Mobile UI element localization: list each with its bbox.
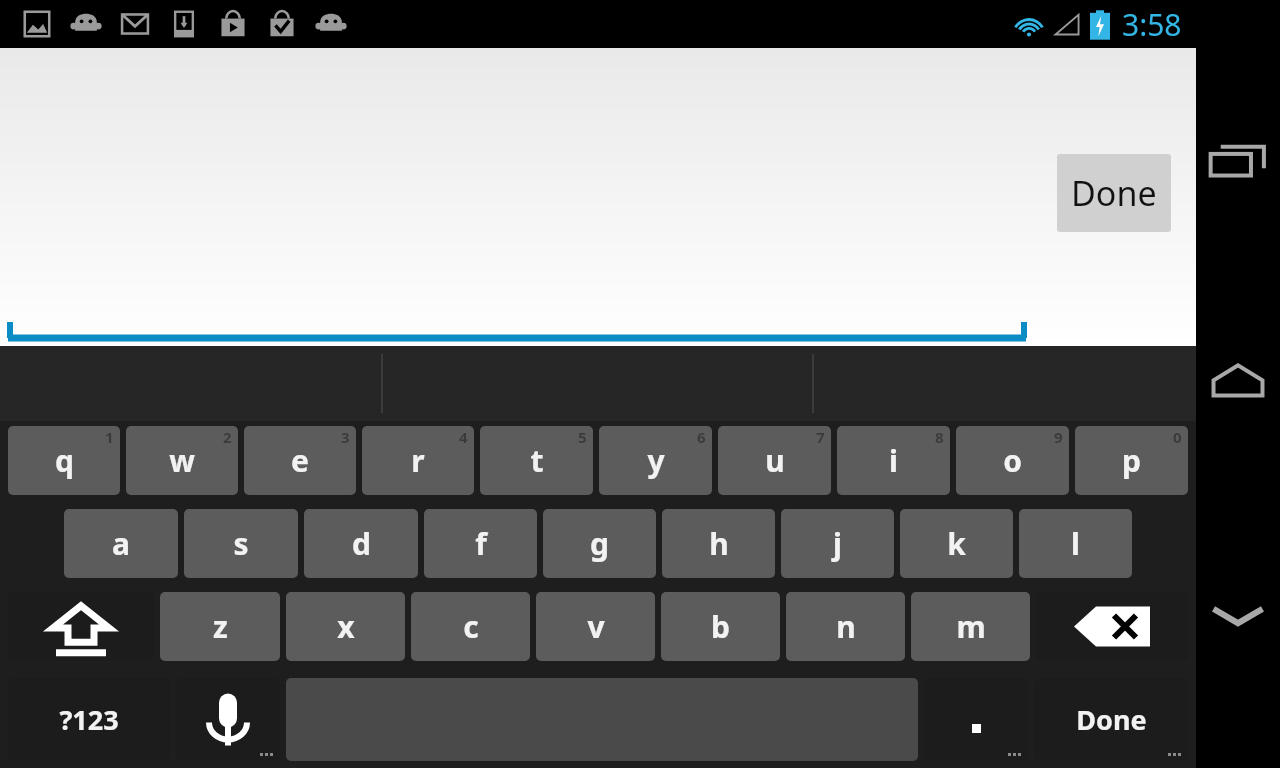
- staticText: y: [647, 440, 665, 481]
- staticText: z: [213, 606, 228, 647]
- staticText: a: [112, 523, 130, 564]
- button[interactable]: u: [718, 426, 831, 495]
- button[interactable]: x: [286, 592, 405, 661]
- staticText: h: [709, 523, 729, 564]
- staticText: w: [169, 440, 195, 481]
- button[interactable]: ?123: [8, 678, 170, 761]
- staticText: d: [352, 523, 371, 564]
- staticText: c: [463, 606, 479, 647]
- button[interactable]: j: [781, 509, 894, 578]
- button[interactable]: g: [543, 509, 656, 578]
- staticText: j: [833, 523, 842, 564]
- button[interactable]: Voice input: [176, 678, 280, 761]
- staticText: b: [711, 606, 730, 647]
- staticText: r: [411, 440, 425, 481]
- button[interactable]: Shift: [8, 592, 154, 661]
- staticText: 7: [816, 427, 825, 447]
- staticText: g: [590, 523, 609, 564]
- button[interactable]: d: [304, 509, 418, 578]
- button[interactable]: q: [8, 426, 120, 495]
- staticText: n: [836, 606, 856, 647]
- staticText: 1: [105, 427, 114, 447]
- button[interactable]: l: [1019, 509, 1132, 578]
- button[interactable]: a: [64, 509, 178, 578]
- button[interactable]: Done: [1057, 154, 1171, 232]
- button[interactable]: m: [911, 592, 1030, 661]
- button[interactable]: k: [900, 509, 1013, 578]
- button[interactable]: p: [1075, 426, 1188, 495]
- staticText: s: [233, 523, 249, 564]
- button[interactable]: Period: [924, 678, 1028, 761]
- button[interactable]: o: [956, 426, 1069, 495]
- button[interactable]: c: [411, 592, 530, 661]
- button[interactable]: w: [126, 426, 238, 495]
- button[interactable]: Home: [1202, 348, 1274, 420]
- button[interactable]: Hide keyboard: [1202, 580, 1274, 652]
- staticText: p: [1122, 440, 1141, 481]
- staticText: e: [291, 440, 309, 481]
- staticText: q: [55, 440, 74, 481]
- staticText: f: [475, 523, 487, 564]
- button[interactable]: z: [160, 592, 280, 661]
- staticText: 3: [341, 427, 350, 447]
- staticText: v: [587, 606, 605, 647]
- staticText: 9: [1054, 427, 1063, 447]
- button[interactable]: y: [599, 426, 712, 495]
- button[interactable]: s: [184, 509, 298, 578]
- button[interactable]: n: [786, 592, 905, 661]
- staticText: 6: [697, 427, 706, 447]
- staticText: 8: [935, 427, 944, 447]
- staticText: Done: [1076, 701, 1147, 738]
- staticText: t: [530, 440, 544, 481]
- button[interactable]: f: [424, 509, 537, 578]
- staticText: 3:58: [1122, 4, 1182, 45]
- staticText: ?123: [59, 701, 119, 738]
- staticText: l: [1071, 523, 1080, 564]
- button[interactable]: Backspace: [1036, 592, 1188, 661]
- staticText: u: [765, 440, 785, 481]
- staticText: m: [956, 606, 986, 647]
- button[interactable]: Recent apps: [1202, 128, 1274, 200]
- button[interactable]: i: [837, 426, 950, 495]
- staticText: 0: [1173, 427, 1182, 447]
- button[interactable]: v: [536, 592, 655, 661]
- button[interactable]: h: [662, 509, 775, 578]
- staticText: 2: [223, 427, 232, 447]
- staticText: i: [889, 440, 898, 481]
- button[interactable]: Done: [1034, 678, 1188, 761]
- button[interactable]: b: [661, 592, 780, 661]
- button[interactable]: r: [362, 426, 474, 495]
- button[interactable]: e: [244, 426, 356, 495]
- staticText: o: [1003, 440, 1022, 481]
- button[interactable]: t: [480, 426, 593, 495]
- staticText: k: [947, 523, 966, 564]
- staticText: Done: [1071, 170, 1157, 216]
- staticText: 5: [578, 427, 587, 447]
- staticText: 4: [459, 427, 468, 447]
- staticText: x: [337, 606, 355, 647]
